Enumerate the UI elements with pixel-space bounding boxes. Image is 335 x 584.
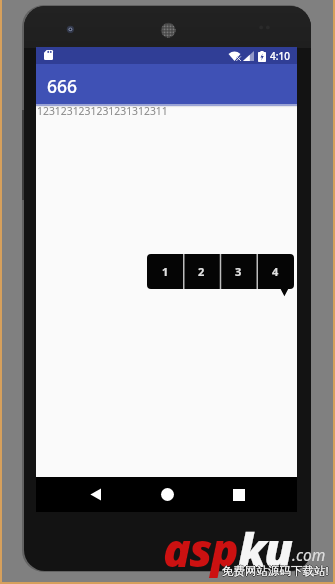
staticText: 4	[272, 264, 279, 279]
staticText: 1231231231231231312311	[37, 104, 168, 118]
button[interactable]: Home	[145, 477, 189, 512]
staticText: 4:10	[270, 49, 290, 63]
button[interactable]: 4	[257, 254, 294, 289]
staticText: 1	[162, 264, 169, 279]
staticText: 免费网站源码下载站!	[222, 564, 329, 580]
staticText: 3	[235, 264, 242, 279]
staticText: 免费网站源码下载站!	[222, 562, 329, 578]
button[interactable]: 3	[220, 254, 257, 289]
staticText: 666	[47, 74, 78, 98]
staticText: 免费网站源码下载站!	[223, 563, 330, 579]
staticText: 免费网站源码下载站!	[222, 563, 329, 579]
button[interactable]: 1	[147, 254, 183, 289]
button[interactable]: 2	[183, 254, 220, 289]
button[interactable]: Back	[73, 477, 117, 512]
button[interactable]: Recent apps	[217, 477, 261, 512]
staticText: .com	[292, 544, 326, 565]
staticText: 2	[198, 264, 205, 279]
staticText: 免费网站源码下载站!	[221, 563, 328, 579]
staticText: asp	[163, 518, 238, 581]
staticText: ku	[238, 518, 291, 581]
